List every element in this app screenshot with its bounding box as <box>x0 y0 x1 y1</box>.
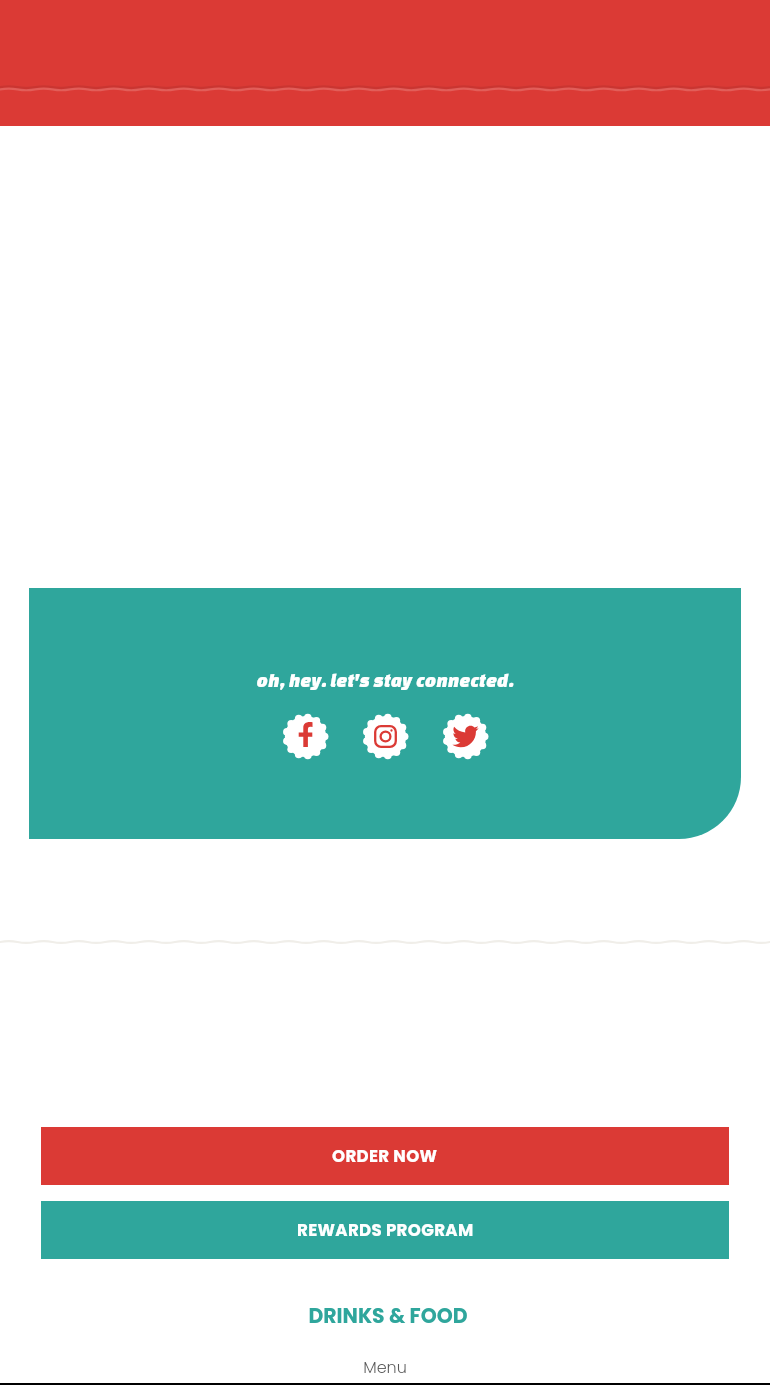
button[interactable]: Menu <box>363 1356 407 1378</box>
button[interactable]: DRINKS & FOOD <box>308 1302 468 1331</box>
button[interactable]: REWARDS PROGRAM <box>41 1201 729 1259</box>
staticText: ORDER NOW <box>332 1145 438 1168</box>
staticText: oh, hey. let's stay connected. <box>256 670 514 691</box>
button[interactable]: Twitter <box>443 714 488 759</box>
staticText: REWARDS PROGRAM <box>297 1219 474 1242</box>
button[interactable]: Facebook <box>283 714 328 759</box>
button[interactable]: Instagram <box>363 714 408 759</box>
button[interactable]: ORDER NOW <box>41 1127 729 1185</box>
